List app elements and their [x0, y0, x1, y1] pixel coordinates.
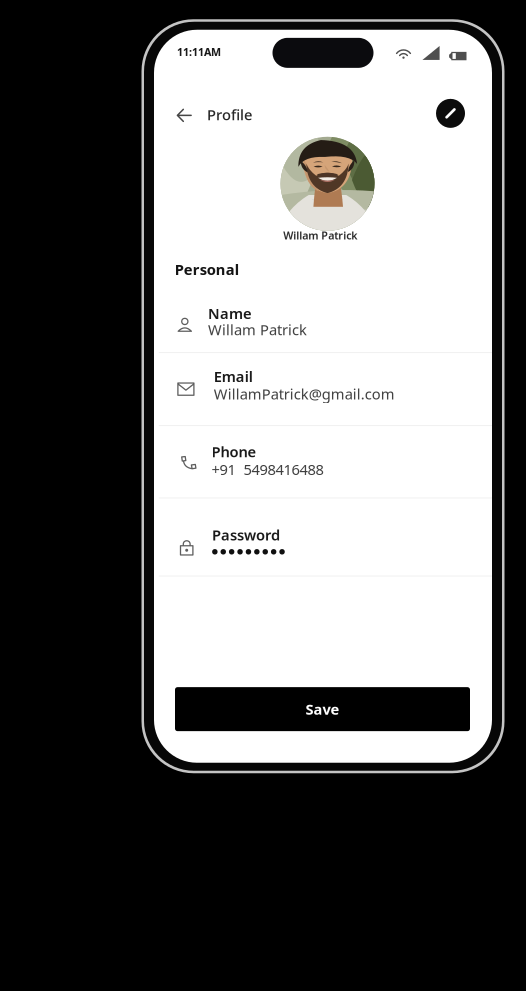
staticText: Personal — [175, 260, 239, 279]
button[interactable]: Back — [168, 99, 200, 131]
staticText: Name — [208, 304, 252, 323]
staticText: Willam Patrick — [283, 228, 357, 242]
staticText: Save — [305, 699, 339, 719]
button[interactable]: Edit profile — [436, 99, 465, 128]
staticText: Profile — [207, 105, 252, 124]
staticText: +91 5498416488 — [211, 460, 323, 479]
staticText: Willam Patrick — [208, 320, 307, 339]
button[interactable]: Save — [175, 687, 470, 731]
button[interactable]: Phone — [154, 498, 492, 576]
staticText: WillamPatrick@gmail.com — [214, 384, 395, 403]
button[interactable]: Name — [154, 353, 492, 426]
button[interactable]: Email — [154, 425, 492, 498]
staticText: Phone — [211, 442, 256, 461]
staticText: Password — [212, 525, 280, 545]
staticText: Email — [214, 367, 253, 386]
staticText: 11:11AM — [177, 45, 221, 59]
